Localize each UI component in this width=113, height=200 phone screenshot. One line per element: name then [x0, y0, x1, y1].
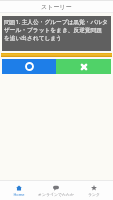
staticText: 問題1. 主人公・グループは黒覚・バルタ ザール・ブラットをまき、反逆覚問題 を…	[4, 18, 108, 42]
button[interactable]: オンラインでたたかう	[37, 181, 75, 200]
button[interactable]: ばつ	[56, 59, 111, 74]
button[interactable]: まる	[2, 59, 56, 74]
staticText: オンラインでたたかう	[37, 192, 75, 197]
button[interactable]: ランク	[75, 181, 113, 200]
button[interactable]: Home	[0, 181, 37, 200]
staticText: Home	[13, 192, 25, 197]
staticText: ストーリー	[41, 3, 72, 11]
staticText: ランク	[88, 192, 100, 197]
